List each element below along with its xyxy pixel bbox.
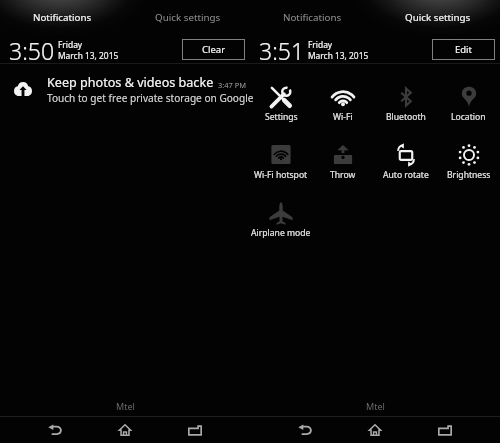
button[interactable]: Bluetooth [374, 64, 437, 122]
staticText: Location [451, 111, 486, 123]
staticText: March 13, 2015 [58, 50, 119, 61]
staticText: 3:51 [259, 35, 305, 66]
button[interactable]: Home [340, 417, 410, 443]
button[interactable]: Back [270, 417, 340, 443]
staticText: Quick settings [155, 11, 221, 24]
staticText: Wi-Fi [333, 111, 353, 123]
staticText: Mtel [116, 400, 135, 412]
button[interactable]: Recent apps [160, 417, 230, 443]
staticText: Bluetooth [386, 111, 426, 123]
button[interactable]: Home [90, 417, 160, 443]
staticText: 3:47 PM [218, 80, 247, 90]
staticText: Edit [455, 43, 473, 56]
staticText: Airplane mode [251, 227, 311, 239]
staticText: Friday [58, 39, 83, 50]
staticText: 3:50 [9, 35, 55, 66]
button[interactable]: Brightness [437, 122, 500, 180]
staticText: Mtel [366, 400, 385, 412]
button[interactable]: Clear [182, 39, 245, 60]
button[interactable]: Location [437, 64, 500, 122]
staticText: Brightness [447, 169, 491, 181]
staticText: Touch to get free private storage on Goo… [47, 91, 254, 105]
button[interactable]: Recent apps [410, 417, 480, 443]
button[interactable]: Wi-Fi [312, 64, 374, 122]
button[interactable]: Notifications [250, 0, 375, 29]
staticText: Friday [308, 39, 333, 50]
staticText: Quick settings [405, 11, 471, 24]
button[interactable]: Auto rotate [374, 122, 437, 180]
staticText: Clear [202, 43, 226, 56]
staticText: Notifications [283, 11, 342, 24]
button[interactable]: Notifications [0, 0, 125, 29]
staticText: Auto rotate [383, 169, 429, 181]
button[interactable]: Keep photos & videos backe [0, 64, 250, 108]
staticText: Notifications [33, 11, 92, 24]
staticText: March 13, 2015 [308, 50, 369, 61]
button[interactable]: Back [20, 417, 90, 443]
button[interactable]: Quick settings [125, 0, 250, 29]
staticText: Wi-Fi hotspot [254, 169, 308, 181]
button[interactable]: Throw [312, 122, 374, 180]
button[interactable]: Wi-Fi hotspot [250, 122, 312, 180]
staticText: Throw [330, 169, 356, 181]
staticText: Settings [265, 111, 298, 123]
button[interactable]: Quick settings [375, 0, 500, 29]
staticText: Keep photos & videos backe [47, 74, 214, 91]
button[interactable]: Edit [432, 39, 495, 60]
button[interactable]: Airplane mode [250, 180, 312, 238]
button[interactable]: Settings [250, 64, 312, 122]
